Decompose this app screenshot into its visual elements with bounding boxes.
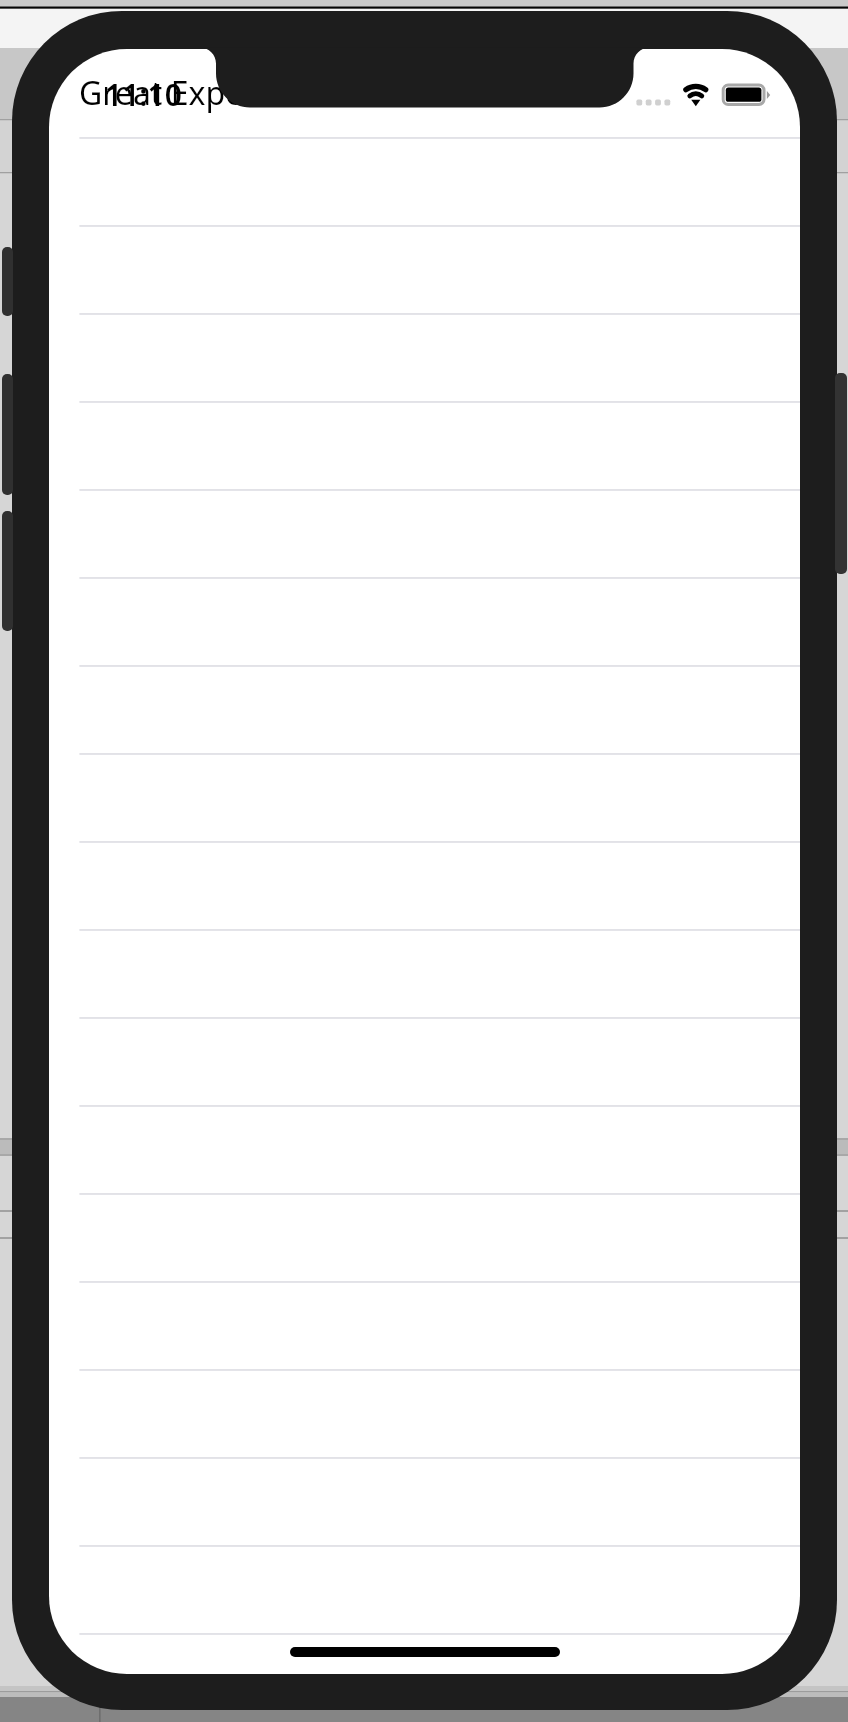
button[interactable] <box>49 313 800 401</box>
button[interactable] <box>49 1017 800 1105</box>
button[interactable] <box>49 1633 800 1674</box>
button[interactable] <box>49 753 800 841</box>
other: Power <box>835 373 847 574</box>
other: Volume up <box>2 374 13 495</box>
button[interactable] <box>49 577 800 665</box>
button[interactable] <box>49 401 800 489</box>
button[interactable] <box>49 1369 800 1457</box>
button[interactable] <box>49 1545 800 1633</box>
button[interactable] <box>49 489 800 577</box>
button[interactable] <box>49 1193 800 1281</box>
staticText: Great Expectations <box>79 71 363 115</box>
button[interactable] <box>49 1457 800 1545</box>
button[interactable] <box>49 665 800 753</box>
other: Ring silent switch <box>2 247 13 316</box>
button[interactable] <box>49 841 800 929</box>
button[interactable] <box>49 929 800 1017</box>
button[interactable] <box>49 1105 800 1193</box>
button[interactable] <box>49 225 800 313</box>
button[interactable] <box>49 1281 800 1369</box>
other: Volume down <box>2 511 13 631</box>
staticText: 11:10 <box>105 74 182 115</box>
other: Home indicator <box>290 1647 560 1657</box>
button[interactable] <box>49 137 800 225</box>
